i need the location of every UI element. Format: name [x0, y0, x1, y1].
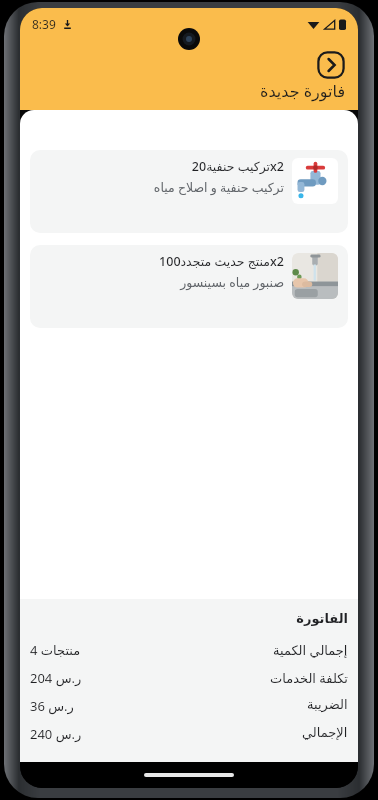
staticText: 240 ر.س	[30, 725, 82, 743]
staticText: الإجمالي	[302, 725, 348, 740]
staticText: 4 منتجات	[30, 641, 81, 659]
staticText: صنبور مياه بسينسور	[180, 274, 284, 291]
staticText: الفاتورة	[30, 611, 348, 626]
staticText: الضريبة	[307, 697, 348, 712]
button[interactable]: التالي	[316, 50, 346, 80]
staticText: إجمالي الكمية	[273, 641, 348, 659]
staticText: تركيب حنفية20x2	[191, 158, 284, 175]
button[interactable]: تركيب حنفية20x2	[30, 150, 348, 233]
staticText: منتج حديث متجدد100x2	[159, 253, 284, 270]
staticText: 204 ر.س	[30, 669, 82, 687]
staticText: فاتورة جديدة	[260, 80, 346, 102]
staticText: 36 ر.س	[30, 697, 74, 715]
staticText: تركيب حنفية و اصلاح مياه	[153, 179, 284, 196]
staticText: تكلفة الخدمات	[270, 669, 348, 687]
button[interactable]: منتج حديث متجدد100x2	[30, 245, 348, 328]
staticText: 8:39	[32, 16, 56, 32]
